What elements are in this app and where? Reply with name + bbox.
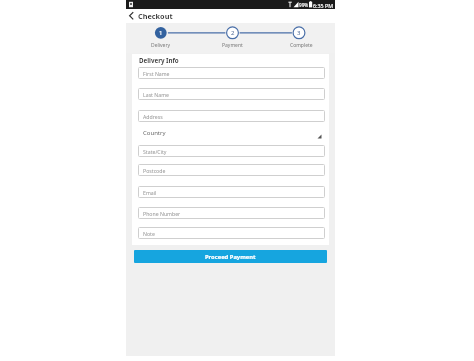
button[interactable]: Address <box>138 110 325 122</box>
button[interactable]: Proceed Payment <box>134 250 327 263</box>
staticText: Checkout <box>138 11 173 21</box>
staticText: 3 <box>297 29 301 37</box>
staticText: Phone Number <box>143 210 181 217</box>
staticText: Note <box>143 230 155 237</box>
staticText: 1 <box>159 29 163 37</box>
staticText: Address <box>143 113 163 120</box>
button[interactable]: Phone Number <box>138 207 325 219</box>
button[interactable]: Country <box>138 127 325 140</box>
staticText: Postcode <box>143 167 166 174</box>
button[interactable]: State/City <box>138 145 325 157</box>
staticText: 2 <box>231 29 235 37</box>
staticText: First Name <box>143 70 170 77</box>
staticText: State/City <box>143 148 167 155</box>
staticText: Email <box>143 189 157 196</box>
staticText: 6:35 PM <box>313 2 334 9</box>
button[interactable]: Postcode <box>138 164 325 176</box>
button[interactable]: Last Name <box>138 88 325 100</box>
button[interactable]: First Name <box>138 67 325 79</box>
staticText: Complete <box>290 42 313 49</box>
button[interactable]: Note <box>138 227 325 239</box>
staticText: Delivery <box>151 42 171 49</box>
button[interactable]: 1 <box>126 23 335 53</box>
staticText: Delivery Info <box>139 56 179 64</box>
button[interactable]: Email <box>138 186 325 198</box>
staticText: Last Name <box>143 91 169 98</box>
staticText: Country <box>143 129 166 137</box>
staticText: 99% <box>299 2 309 8</box>
staticText: Proceed Payment <box>205 253 256 261</box>
button[interactable]: Checkout <box>126 9 335 23</box>
staticText: Payment <box>222 42 243 49</box>
